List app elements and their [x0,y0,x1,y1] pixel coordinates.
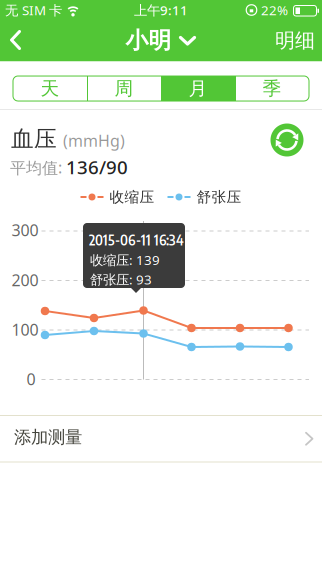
staticText: 100 [11,319,38,340]
staticText: 天 [40,77,59,100]
staticText: 平均值: [10,157,62,178]
staticText: 周 [114,77,133,100]
button[interactable]: 周 [87,76,161,101]
button[interactable]: Back [2,20,34,61]
button[interactable]: 天 [13,76,87,101]
button[interactable]: 小明 [125,27,196,54]
staticText: 季 [262,77,281,100]
staticText: 136/90 [66,154,128,179]
staticText: 200 [11,269,38,291]
staticText: 明细 [275,28,315,53]
button[interactable]: 明细 [269,18,322,63]
button[interactable]: 季 [235,76,309,101]
button[interactable]: 添加测量 [0,415,322,462]
staticText: 小明 [125,27,171,54]
staticText: 添加测量 [14,427,82,448]
staticText: 收缩压: 139 [90,251,160,269]
staticText: 舒张压 [196,188,241,206]
button[interactable]: 刷新 [270,123,303,156]
staticText: 月 [188,77,207,100]
staticText: (mmHg) [63,130,125,151]
staticText: 血压 [11,125,57,153]
staticText: 300 [11,219,38,241]
staticText: 2015-06-11 16:34 [89,231,184,248]
staticText: 舒张压: 93 [90,270,152,288]
button[interactable]: 月 [161,76,235,101]
staticText: 上午9:11 [134,1,188,19]
staticText: 无 SIM 卡 [5,1,62,19]
staticText: 收缩压 [109,188,154,206]
staticText: 0 [26,368,35,390]
staticText: 22% [261,1,288,19]
